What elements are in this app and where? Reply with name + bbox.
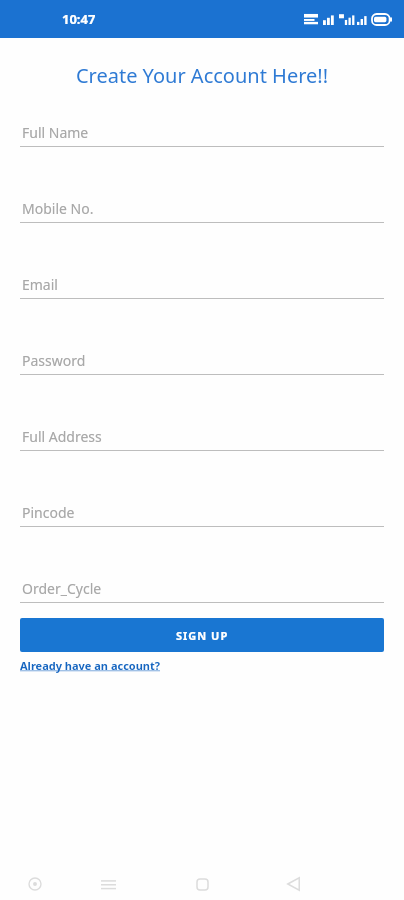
button[interactable]: Pincode [20,503,384,527]
button[interactable]: Password [20,351,384,375]
button[interactable]: SIGN UP [20,618,384,652]
button[interactable]: Already have an account? [20,657,161,674]
staticText: Already have an account? [20,658,161,673]
button[interactable]: Home [188,870,216,898]
staticText: Mobile No. [22,199,94,218]
button[interactable]: Assistant [21,870,49,898]
staticText: Order_Cycle [22,579,102,598]
button[interactable]: Back [279,870,307,898]
button[interactable]: Full Name [20,123,384,147]
button[interactable]: Recent apps [94,870,122,898]
button[interactable]: Email [20,275,384,299]
staticText: Full Name [22,123,89,142]
staticText: 10:47 [62,10,96,28]
staticText: Pincode [22,503,75,522]
staticText: SIGN UP [176,628,229,643]
button[interactable]: Mobile No. [20,199,384,223]
staticText: Full Address [22,427,102,446]
button[interactable]: Full Address [20,427,384,451]
staticText: Email [22,275,58,294]
staticText: Password [22,351,86,370]
staticText: Create Your Account Here!! [0,62,404,89]
button[interactable]: Order_Cycle [20,579,384,603]
